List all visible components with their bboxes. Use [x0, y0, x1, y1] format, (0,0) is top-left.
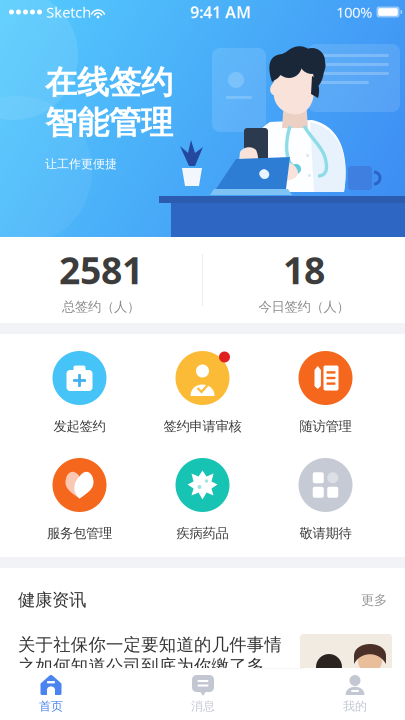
staticText: 疾病药品 [176, 525, 228, 541]
staticText: 总签约（人） [62, 299, 140, 315]
button[interactable]: 消息 [152, 668, 254, 720]
button[interactable]: 签约申请审核 [141, 334, 264, 441]
button[interactable]: 随访管理 [264, 334, 387, 441]
staticText: 健康资讯 [18, 589, 86, 611]
button[interactable]: 关于社保你一定要知道的几件事情之如何知道公司到底为你缴了多 [0, 634, 405, 692]
staticText: 消息 [191, 699, 215, 714]
staticText: 我的 [343, 699, 367, 714]
staticText: 在线签约 [45, 63, 173, 102]
staticText: 9:41 AM [190, 1, 251, 23]
staticText: 2581 [59, 245, 143, 295]
staticText: 敬请期待 [299, 525, 351, 541]
staticText: 100% [336, 2, 372, 22]
button[interactable]: 发起签约 [18, 334, 141, 441]
button[interactable]: 首页 [0, 668, 102, 720]
staticText: 18 [283, 245, 325, 295]
button[interactable]: 服务包管理 [18, 441, 141, 548]
staticText: 关于社保你一定要知道的几件事情之如何知道公司到底为你缴了多 [18, 634, 281, 677]
staticText: 智能管理 [45, 103, 173, 143]
staticText: 发起签约 [53, 418, 105, 434]
staticText: Sketch [42, 2, 91, 22]
button[interactable]: 更多 [337, 584, 387, 616]
staticText: 更多 [361, 592, 387, 608]
staticText: 首页 [39, 699, 63, 714]
button[interactable]: 疾病药品 [141, 441, 264, 548]
button[interactable]: 敬请期待 [264, 441, 387, 548]
staticText: 随访管理 [299, 418, 351, 434]
staticText: 今日签约（人） [258, 299, 349, 315]
staticText: 让工作更便捷 [45, 157, 117, 171]
staticText: 服务包管理 [47, 525, 112, 541]
staticText: 签约申请审核 [163, 418, 241, 434]
button[interactable]: 我的 [304, 668, 405, 720]
